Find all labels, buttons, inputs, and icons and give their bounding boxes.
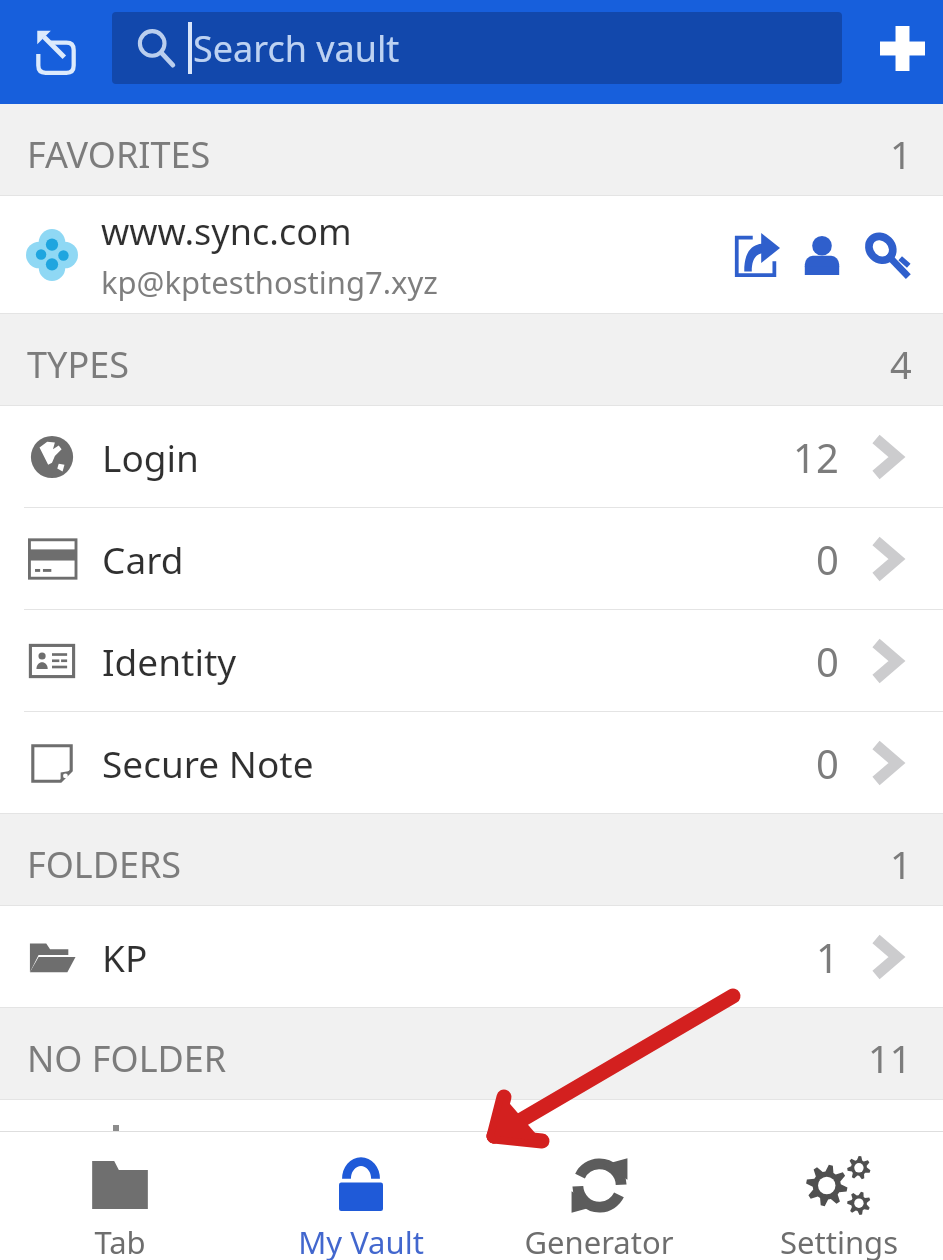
button[interactable]: Open in new window xyxy=(0,0,112,104)
staticText: 12 xyxy=(793,430,839,484)
button[interactable]: Search vault xyxy=(112,12,842,84)
staticText: www.sync.com xyxy=(101,207,352,256)
staticText: 1 xyxy=(816,930,839,984)
staticText: Identity xyxy=(102,636,237,686)
staticText: 11 xyxy=(868,1032,912,1084)
staticText: Login xyxy=(102,432,199,482)
staticText: FOLDERS xyxy=(27,840,182,889)
button[interactable]: Add item xyxy=(842,0,943,104)
button[interactable]: Copy username xyxy=(789,222,855,288)
staticText: Search vault xyxy=(193,24,400,73)
button[interactable]: www.sync.com xyxy=(0,196,943,314)
staticText: 0 xyxy=(816,532,839,586)
staticText: 1 xyxy=(890,128,912,180)
button[interactable]: My Vault xyxy=(261,1131,461,1260)
staticText: Card xyxy=(102,534,184,584)
staticText: 0 xyxy=(816,634,839,688)
staticText: TYPES xyxy=(27,340,129,389)
staticText: Generator xyxy=(524,1221,674,1260)
staticText: KP xyxy=(102,932,148,982)
button[interactable] xyxy=(0,1100,943,1131)
staticText: Settings xyxy=(780,1221,898,1260)
staticText: FAVORITES xyxy=(27,130,211,179)
staticText: Secure Note xyxy=(102,738,314,788)
staticText: Tab xyxy=(94,1221,146,1260)
button[interactable]: Identity xyxy=(0,610,943,712)
staticText: kp@kptesthosting7.xyz xyxy=(101,261,438,303)
staticText: My Vault xyxy=(298,1221,424,1260)
button[interactable]: Secure Note xyxy=(0,712,943,814)
button[interactable]: Copy password xyxy=(855,222,921,288)
staticText: 1 xyxy=(890,838,912,890)
button[interactable]: Launch xyxy=(723,222,789,288)
staticText: NO FOLDER xyxy=(27,1034,227,1083)
staticText: 0 xyxy=(816,736,839,790)
button[interactable]: Tab xyxy=(20,1131,220,1260)
button[interactable]: Card xyxy=(0,508,943,610)
staticText: 4 xyxy=(890,338,912,390)
button[interactable]: Generator xyxy=(499,1131,699,1260)
button[interactable]: Settings xyxy=(739,1131,939,1260)
button[interactable]: KP xyxy=(0,906,943,1008)
button[interactable]: Login xyxy=(0,406,943,508)
